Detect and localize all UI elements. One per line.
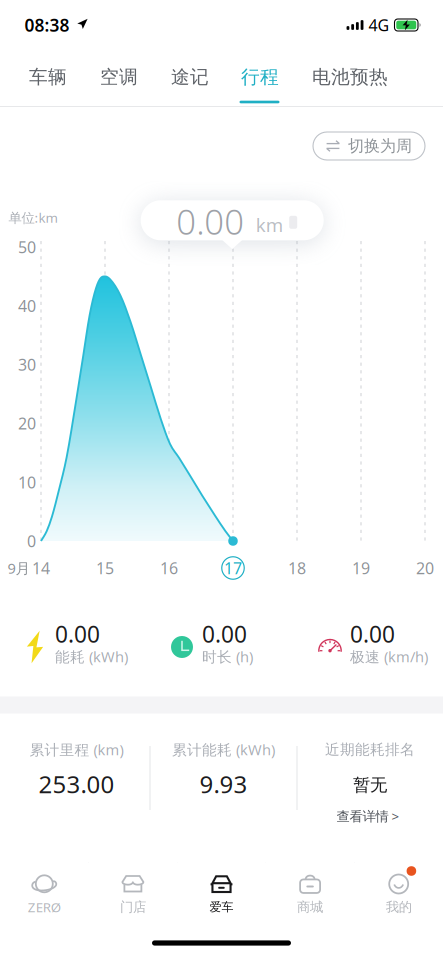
button[interactable]: 我的 [354,862,443,924]
staticText: 15 [96,557,114,579]
staticText: 14 [32,557,50,579]
staticText: 40 [18,295,36,316]
staticText: 门店 [120,899,146,915]
staticText: 0.00 [176,198,244,244]
button[interactable]: 行程 [230,49,290,104]
staticText: 16 [160,557,178,579]
staticText: 极速 (km/h) [350,647,428,666]
staticText: 电池预热 [312,65,388,88]
staticText: 爱车 [209,900,233,914]
staticText: 0.00 [202,619,247,649]
staticText: 近期能耗排名 [325,740,415,758]
button[interactable]: 车辆 [18,49,78,104]
button[interactable]: ZERØ [0,862,89,924]
staticText: 途记 [171,65,209,88]
staticText: 车辆 [29,65,67,88]
staticText: 能耗 (kWh) [55,647,128,666]
staticText: 253.00 [38,768,114,800]
staticText: 18 [288,557,306,579]
staticText: 商城 [297,899,323,915]
button[interactable]: 爱车 [177,862,266,924]
staticText: 切换为周 [348,136,412,156]
button[interactable]: 电池预热 [301,49,399,104]
staticText: 0 [27,530,36,552]
staticText: 10 [18,472,36,493]
staticText: 累计能耗 (kWh) [172,740,275,759]
staticText: 累计里程 (km) [29,740,123,759]
staticText: 时长 (h) [202,647,253,666]
staticText: 19 [352,557,370,579]
button[interactable]: 商城 [266,862,354,924]
staticText: 行程 [241,65,279,88]
staticText: km [256,212,283,237]
staticText: 空调 [100,65,138,88]
staticText: 0.00 [350,619,395,649]
staticText: 暂无 [353,774,387,796]
staticText: 08:38 [24,13,69,36]
staticText: 查看详情 > [336,807,399,825]
button[interactable]: 门店 [89,862,177,924]
staticText: 20 [416,557,434,579]
staticText: 单位:km [8,209,57,226]
button[interactable]: 空调 [89,49,149,104]
button[interactable]: 查看详情 > [326,803,409,829]
staticText: 30 [18,354,36,375]
button[interactable]: 途记 [160,49,220,104]
staticText: 9.93 [199,768,247,800]
staticText: 50 [18,236,36,258]
staticText: 4G [368,14,389,36]
staticText: 0.00 [55,619,100,649]
staticText: 我的 [386,899,412,915]
button[interactable]: 切换为周 [313,132,425,160]
staticText: 20 [18,413,36,434]
staticText: 9月 [7,558,30,578]
staticText: 17 [224,557,242,579]
staticText: ZERØ [28,898,61,916]
